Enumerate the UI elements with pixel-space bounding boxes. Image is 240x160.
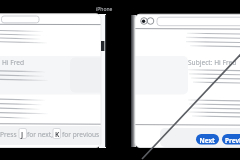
button[interactable]: Email app screenshots bbox=[0, 0, 240, 160]
other: Email app screenshots bbox=[0, 0, 240, 160]
